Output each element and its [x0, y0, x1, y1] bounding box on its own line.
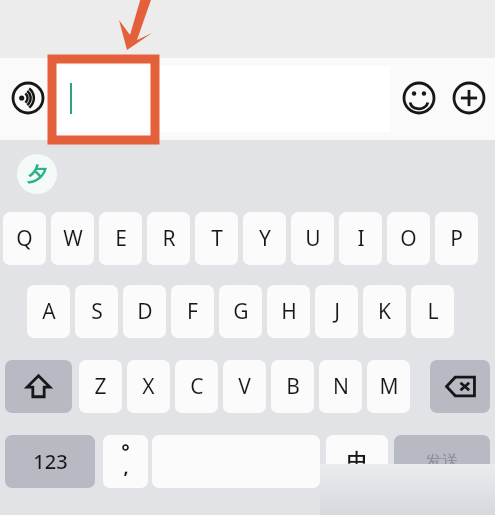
staticText: R — [162, 224, 176, 253]
staticText: S — [91, 297, 103, 326]
button[interactable]: L — [411, 285, 454, 338]
button[interactable]: D — [123, 285, 166, 338]
staticText: I — [357, 224, 365, 253]
staticText: X — [142, 372, 155, 401]
staticText: U — [305, 224, 321, 253]
staticText: , — [123, 455, 129, 480]
button[interactable]: H — [267, 285, 310, 338]
button[interactable]: B — [271, 360, 314, 413]
staticText: G — [233, 297, 249, 326]
button[interactable]: Q — [3, 212, 46, 265]
button[interactable]: R — [147, 212, 190, 265]
staticText: C — [190, 372, 204, 401]
staticText: Y — [259, 224, 271, 253]
button[interactable]: V — [223, 360, 266, 413]
button[interactable]: I — [339, 212, 382, 265]
button[interactable]: Z — [79, 360, 122, 413]
staticText: E — [115, 224, 127, 253]
staticText: D — [137, 297, 153, 326]
staticText: A — [42, 297, 56, 326]
staticText: N — [333, 372, 349, 401]
button[interactable]: Comma — [103, 435, 148, 488]
staticText: P — [450, 224, 463, 253]
button[interactable]: Shift — [5, 360, 72, 413]
staticText: H — [281, 297, 297, 326]
button[interactable]: 中 — [326, 435, 388, 488]
button[interactable]: F — [171, 285, 214, 338]
staticText: B — [286, 372, 300, 401]
button[interactable]: 发送 — [394, 435, 490, 488]
button[interactable]: T — [195, 212, 238, 265]
button[interactable]: G — [219, 285, 262, 338]
staticText: Z — [94, 372, 107, 401]
button[interactable]: K — [363, 285, 406, 338]
button[interactable]: C — [175, 360, 218, 413]
staticText: 中 — [347, 449, 367, 474]
button[interactable]: Voice input — [11, 81, 45, 115]
staticText: T — [211, 224, 223, 253]
staticText: M — [379, 372, 399, 401]
button[interactable]: S — [75, 285, 118, 338]
button[interactable]: Backspace — [430, 360, 490, 413]
button[interactable]: Input method logo — [17, 154, 57, 194]
button[interactable]: W — [51, 212, 94, 265]
staticText: Q — [16, 224, 33, 253]
button[interactable]: A — [27, 285, 70, 338]
staticText: K — [378, 297, 391, 326]
staticText: V — [238, 372, 251, 401]
staticText: O — [400, 224, 417, 253]
staticText: L — [427, 297, 439, 326]
staticText: 夕 — [27, 162, 47, 187]
button[interactable]: More options — [452, 81, 486, 115]
button[interactable]: Emoji — [402, 81, 436, 115]
button[interactable] — [52, 66, 390, 132]
staticText: F — [187, 297, 198, 326]
staticText: 发送 — [425, 451, 459, 472]
staticText: W — [63, 224, 83, 253]
button[interactable]: Y — [243, 212, 286, 265]
button[interactable]: J — [315, 285, 358, 338]
button[interactable]: O — [387, 212, 430, 265]
button[interactable]: N — [319, 360, 362, 413]
button[interactable]: U — [291, 212, 334, 265]
button[interactable]: M — [367, 360, 410, 413]
staticText: J — [334, 297, 340, 326]
button[interactable]: 123 — [5, 435, 95, 488]
staticText: 123 — [33, 448, 68, 475]
button[interactable]: E — [99, 212, 142, 265]
button[interactable]: X — [127, 360, 170, 413]
button[interactable]: P — [435, 212, 478, 265]
